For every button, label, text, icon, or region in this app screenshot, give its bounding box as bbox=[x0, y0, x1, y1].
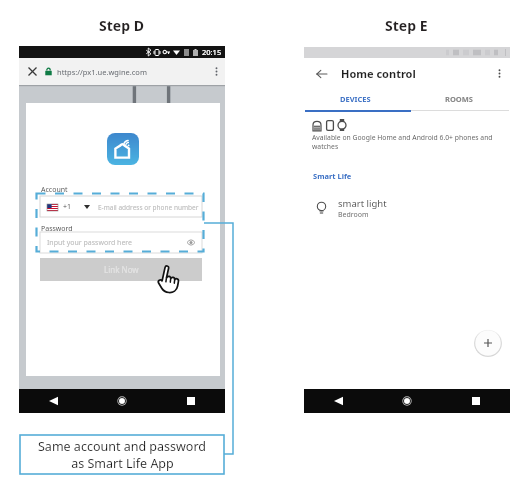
staticText: Bedroom bbox=[338, 210, 369, 220]
button[interactable]: Home bbox=[87, 389, 156, 413]
staticText: Input your password here bbox=[47, 238, 133, 248]
staticText: Home control bbox=[341, 66, 416, 81]
staticText: Smart Life bbox=[313, 171, 352, 181]
button[interactable]: Back bbox=[304, 389, 372, 413]
staticText: +1 bbox=[63, 202, 72, 212]
button[interactable]: More options bbox=[488, 60, 510, 87]
staticText: Password bbox=[41, 224, 73, 234]
button[interactable]: Back bbox=[310, 60, 332, 87]
staticText: Link Now bbox=[104, 264, 139, 275]
button[interactable]: Recent apps bbox=[441, 389, 510, 413]
button[interactable]: Home bbox=[372, 389, 441, 413]
button[interactable]: Input your password here bbox=[40, 232, 202, 253]
staticText: Account bbox=[41, 185, 68, 195]
staticText: ROOMS bbox=[445, 94, 473, 104]
button[interactable]: smart light bbox=[304, 193, 510, 223]
staticText: smart light bbox=[338, 197, 387, 210]
staticText: Step E bbox=[385, 16, 428, 35]
button[interactable]: +1 bbox=[40, 196, 202, 217]
button[interactable]: More options bbox=[207, 58, 225, 85]
staticText: Step D bbox=[99, 16, 144, 35]
button[interactable]: Recent apps bbox=[156, 389, 225, 413]
button[interactable]: Close bbox=[19, 58, 45, 85]
button[interactable]: ROOMS bbox=[407, 88, 510, 110]
button[interactable]: Add device bbox=[474, 329, 502, 357]
staticText: https://px1.ue.wgine.com bbox=[57, 67, 147, 77]
staticText: 20:15 bbox=[202, 47, 222, 57]
staticText: Available on Google Home and Android 6.0… bbox=[312, 133, 496, 151]
button[interactable]: DEVICES bbox=[304, 88, 407, 110]
button[interactable]: Link Now bbox=[40, 258, 202, 281]
staticText: E-mail address or phone number bbox=[98, 203, 199, 212]
button[interactable]: Back bbox=[19, 389, 87, 413]
staticText: as Smart Life App bbox=[71, 455, 174, 472]
staticText: Same account and password bbox=[38, 438, 206, 455]
staticText: DEVICES bbox=[340, 94, 371, 104]
